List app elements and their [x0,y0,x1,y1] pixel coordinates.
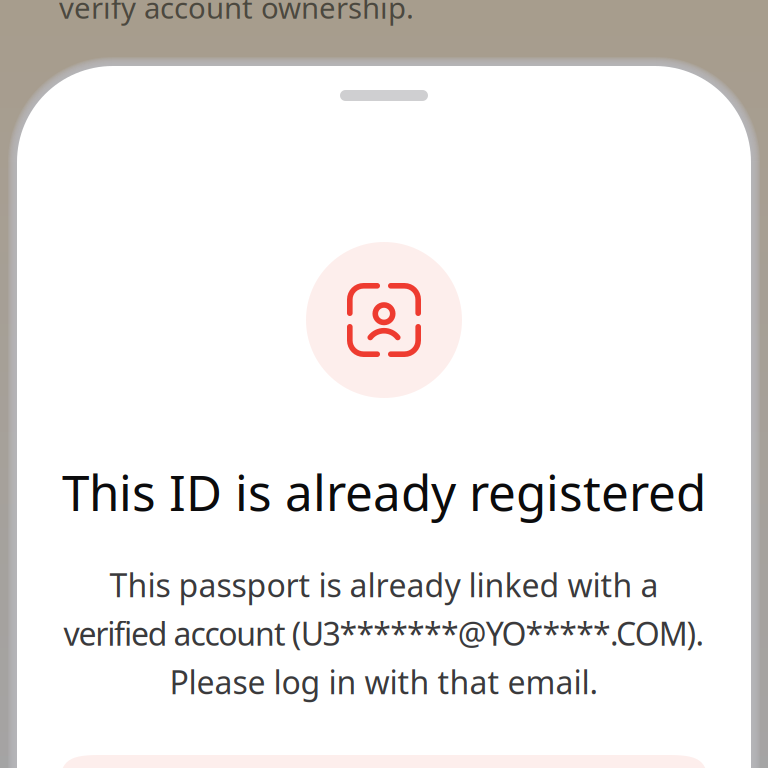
staticText: Please log in with that email. [169,660,598,703]
staticText: verify account ownership. [59,0,414,27]
staticText: This ID is already registered [62,459,706,524]
button[interactable]: Log in [59,755,709,768]
staticText: verified account (U3*******@YO*****.COM)… [63,612,704,654]
staticText: This passport is already linked with a [109,563,658,606]
